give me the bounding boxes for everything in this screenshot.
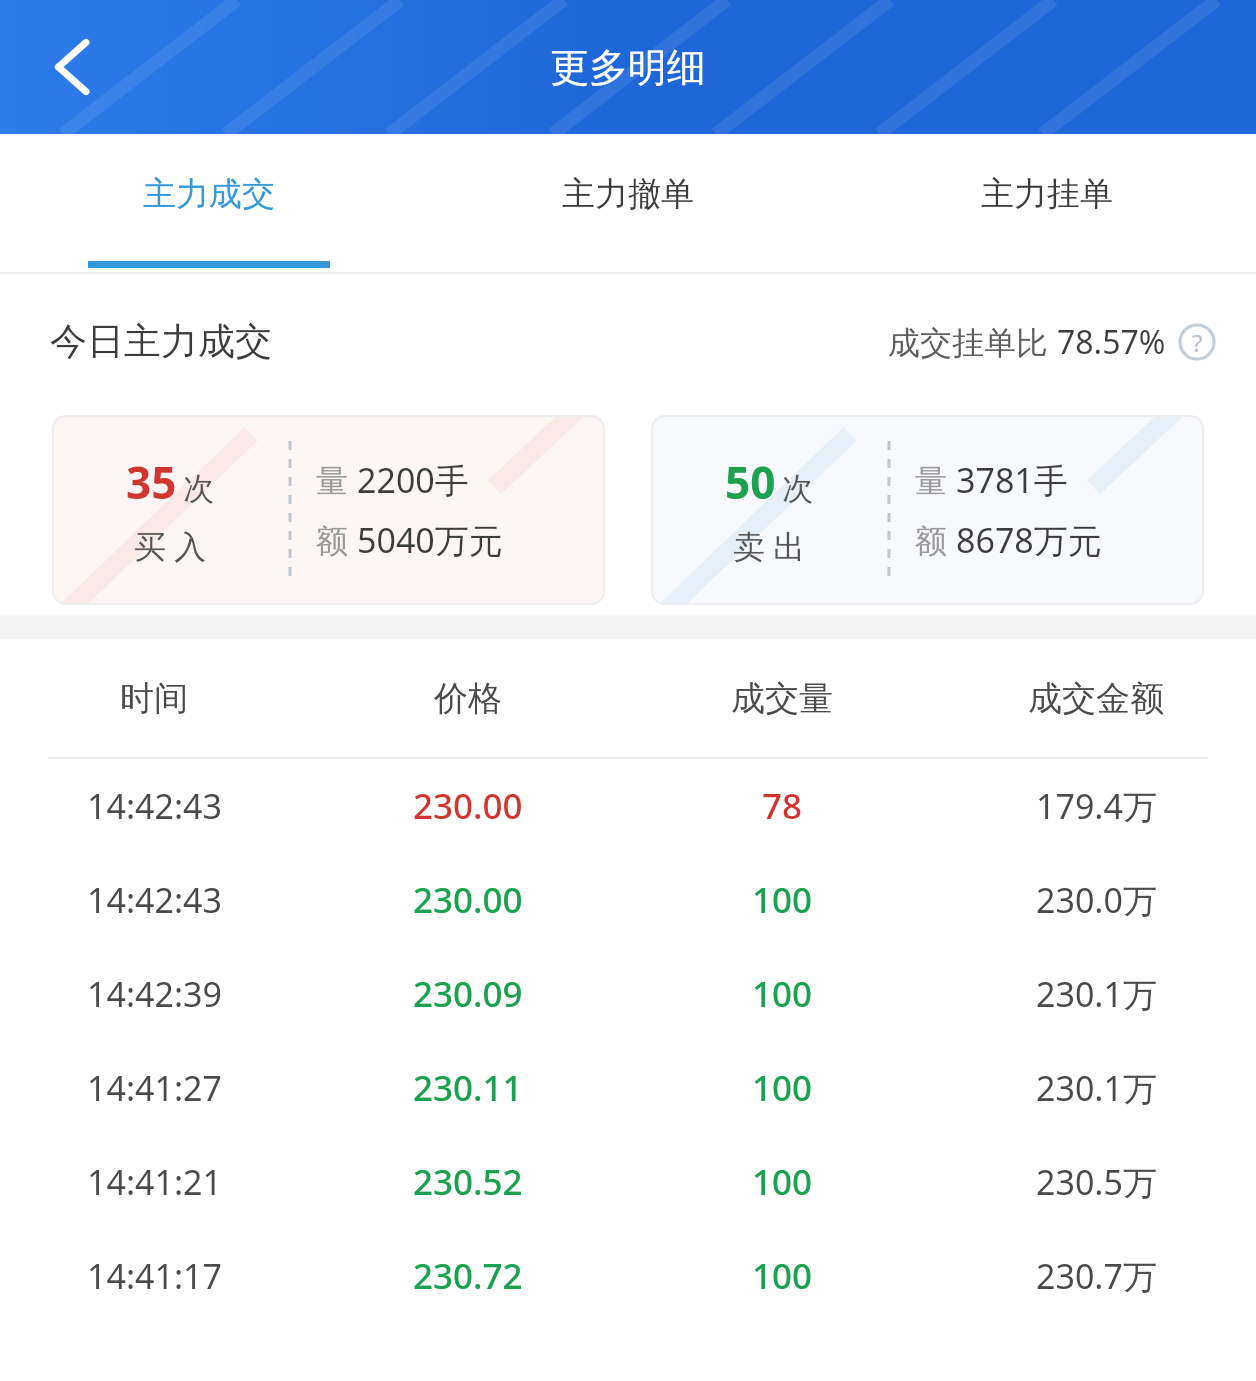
button[interactable]: 35 [52,415,605,605]
button[interactable]: 14:42:43 [0,759,1256,853]
staticText: 时间 [120,677,188,720]
staticText: 230.72 [413,1252,523,1300]
staticText: 3781手 [956,457,1068,503]
staticText: 成交金额 [1028,677,1164,720]
staticText: 额 [316,518,357,562]
staticText: 价格 [434,677,502,720]
button[interactable]: 14:41:27 [0,1041,1256,1135]
staticText: 主力挂单 [981,173,1113,215]
staticText: 230.00 [413,782,523,830]
staticText: ? [1192,326,1203,359]
staticText: 主力撤单 [562,173,694,215]
staticText: 5040万元 [357,517,503,563]
staticText: 更多明细 [550,43,706,92]
staticText: 次 [782,469,813,508]
staticText: 230.09 [413,970,523,1018]
staticText: 78.57% [1057,320,1166,364]
staticText: 14:42:39 [87,971,222,1017]
staticText: 230.1万 [1036,1065,1157,1111]
staticText: 230.0万 [1036,877,1157,923]
staticText: 78 [762,782,803,830]
staticText: 2200手 [357,457,469,503]
staticText: 230.1万 [1036,971,1157,1017]
staticText: 230.11 [413,1064,523,1112]
staticText: 50 [725,452,776,512]
staticText: 100 [752,970,813,1018]
staticText: 主力成交 [143,173,275,215]
button[interactable]: 50 [651,415,1204,605]
staticText: 100 [752,876,813,924]
button[interactable]: 14:42:43 [0,853,1256,947]
button[interactable]: 成交挂单比 [888,320,1216,364]
staticText: 100 [752,1064,813,1112]
staticText: 14:41:21 [87,1159,222,1205]
staticText: 卖 出 [733,524,806,568]
staticText: 成交量 [731,677,833,720]
button[interactable]: 14:41:17 [0,1229,1256,1323]
staticText: 成交挂单比 [888,320,1057,364]
staticText: 14:41:27 [87,1065,222,1111]
staticText: 230.7万 [1036,1253,1157,1299]
button[interactable]: 主力撤单 [418,134,837,274]
staticText: 买 入 [134,524,207,568]
other: Help [1178,323,1216,361]
staticText: 额 [915,518,956,562]
button[interactable]: Back [18,13,126,121]
staticText: 14:42:43 [87,877,222,923]
staticText: 179.4万 [1036,783,1157,829]
staticText: 14:41:17 [87,1253,222,1299]
button[interactable]: 主力挂单 [837,134,1256,274]
staticText: 100 [752,1158,813,1206]
staticText: 100 [752,1252,813,1300]
button[interactable]: 14:41:21 [0,1135,1256,1229]
staticText: 量 [316,458,357,502]
button[interactable]: 14:42:39 [0,947,1256,1041]
button[interactable]: 主力成交 [0,134,418,274]
staticText: 今日主力成交 [50,318,272,365]
staticText: 14:42:43 [87,783,222,829]
staticText: 35 [126,452,177,512]
staticText: 230.52 [413,1158,523,1206]
staticText: 8678万元 [956,517,1102,563]
staticText: 量 [915,458,956,502]
staticText: 次 [183,469,214,508]
staticText: 230.00 [413,876,523,924]
staticText: 230.5万 [1036,1159,1157,1205]
